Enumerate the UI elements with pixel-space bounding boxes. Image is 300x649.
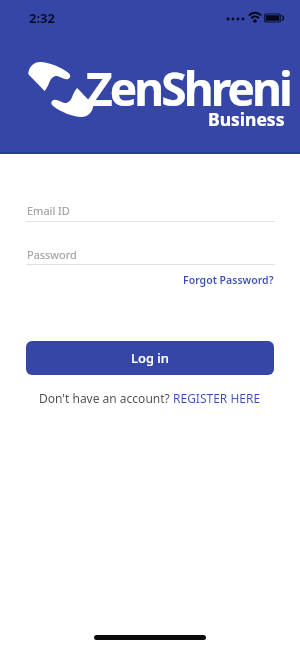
staticText: Email ID	[27, 203, 70, 218]
staticText: Password	[27, 247, 77, 262]
staticText: Log in	[131, 349, 169, 367]
staticText: ZenShreni	[86, 57, 290, 120]
button[interactable]: Forgot Password?	[183, 273, 274, 287]
staticText: Business	[208, 107, 285, 131]
button[interactable]: REGISTER HERE	[173, 390, 261, 406]
staticText: REGISTER HERE	[173, 390, 261, 406]
button[interactable]: Email ID	[26, 200, 275, 222]
button[interactable]: Log in	[26, 341, 274, 375]
staticText: Don't have an account?	[39, 390, 173, 406]
staticText: Forgot Password?	[183, 273, 274, 287]
staticText: 2:32	[29, 9, 55, 27]
button[interactable]: Password	[26, 244, 275, 265]
